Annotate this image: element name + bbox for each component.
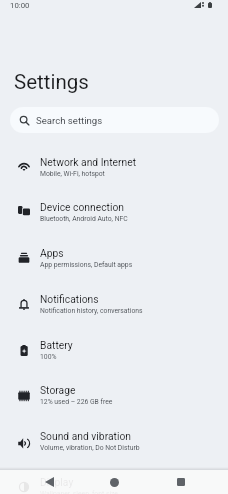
button[interactable]: Back [35, 470, 63, 494]
staticText: Network and Internet [40, 156, 137, 168]
staticText: Sound and vibration [40, 430, 131, 442]
staticText: Device connection [40, 201, 124, 213]
staticText: 100% [40, 353, 57, 361]
staticText: Wallpaper, sleep, font size [40, 490, 118, 494]
staticText: 10:00 [10, 1, 30, 10]
staticText: Battery [40, 339, 73, 351]
staticText: Storage [40, 384, 76, 396]
button[interactable]: Home [100, 470, 128, 494]
button[interactable]: Storage [0, 372, 228, 418]
button[interactable]: Recent apps [167, 470, 195, 494]
button[interactable]: Display [0, 464, 228, 494]
button[interactable]: Battery [0, 327, 228, 373]
button[interactable]: Sound and vibration [0, 418, 228, 464]
staticText: Notification history, conversations [40, 307, 143, 315]
staticText: Mobile, Wi-Fi, hotspot [40, 170, 105, 178]
staticText: Notifications [40, 293, 99, 305]
staticText: 12% used – 226 GB free [40, 398, 113, 406]
staticText: Bluetooth, Android Auto, NFC [40, 215, 128, 223]
staticText: Settings [14, 70, 89, 94]
button[interactable]: Network and Internet [0, 144, 228, 190]
staticText: Search settings [36, 115, 103, 126]
staticText: Display [40, 476, 74, 488]
button[interactable]: Apps [0, 235, 228, 281]
button[interactable]: Search settings [10, 107, 219, 133]
button[interactable]: Notifications [0, 281, 228, 327]
staticText: App permissions, Default apps [40, 261, 133, 269]
button[interactable]: Device connection [0, 189, 228, 235]
staticText: Volume, vibration, Do Not Disturb [40, 444, 140, 452]
staticText: Apps [40, 247, 64, 259]
